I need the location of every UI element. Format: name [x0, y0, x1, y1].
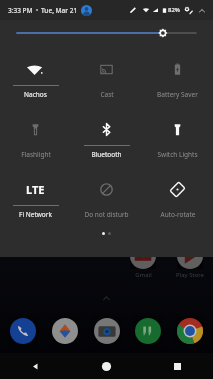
- button[interactable]: Recents: [142, 353, 213, 379]
- staticText: Play Store: [176, 271, 204, 279]
- staticText: LTE: [26, 182, 45, 197]
- button[interactable]: User: [81, 5, 92, 16]
- button[interactable]: Camera: [92, 316, 122, 346]
- button[interactable]: Nachos: [0, 50, 71, 110]
- button[interactable]: Home: [71, 353, 142, 379]
- button[interactable]: Auto-rotate: [142, 170, 213, 230]
- button[interactable]: Bluetooth: [71, 110, 142, 170]
- button[interactable]: Settings: [183, 5, 193, 15]
- staticText: Bluetooth: [91, 150, 122, 159]
- button[interactable]: Do not disturb: [71, 170, 142, 230]
- staticText: Auto-rotate: [160, 210, 196, 219]
- button[interactable]: Battery Saver: [142, 50, 213, 110]
- staticText: Battery Saver: [157, 90, 198, 99]
- button[interactable]: Brightness: [0, 25, 213, 41]
- staticText: Cast: [100, 90, 114, 99]
- staticText: 82%: [168, 6, 180, 14]
- staticText: 3:33 PM: [8, 6, 33, 15]
- staticText: Do not disturb: [84, 210, 129, 219]
- staticText: Flashlight: [21, 150, 51, 159]
- button[interactable]: Play Store: [173, 243, 207, 279]
- button[interactable]: Collapse: [197, 6, 206, 15]
- button[interactable]: Phone: [8, 316, 38, 346]
- staticText: Nachos: [24, 90, 47, 99]
- button[interactable]: Cast: [71, 50, 142, 110]
- button[interactable]: LTE: [0, 170, 71, 230]
- staticText: Gmail: [135, 271, 152, 279]
- button[interactable]: Switch Lights: [142, 110, 213, 170]
- button[interactable]: Chrome: [175, 316, 205, 346]
- staticText: Fi Network: [19, 210, 52, 219]
- staticText: Switch Lights: [157, 150, 198, 159]
- button[interactable]: Gmail: [126, 243, 160, 279]
- button[interactable]: Flashlight: [0, 110, 71, 170]
- button[interactable]: Back: [0, 353, 71, 379]
- staticText: Tue, Mar 21: [41, 6, 78, 15]
- button[interactable]: Hangouts: [133, 316, 163, 346]
- button[interactable]: Photos: [50, 316, 80, 346]
